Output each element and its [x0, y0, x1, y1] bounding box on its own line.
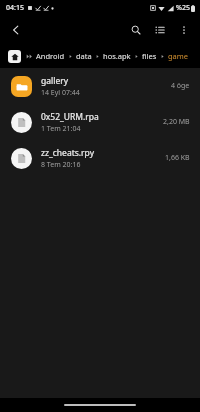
- staticText: 04:15: [6, 3, 24, 13]
- button[interactable]: zz_cheats.rpy: [0, 140, 200, 176]
- button[interactable]: gallery: [0, 68, 200, 104]
- staticText: 4 öge: [171, 81, 190, 91]
- button[interactable]: files: [142, 51, 157, 61]
- button[interactable]: Home: [8, 50, 21, 63]
- button[interactable]: 0x52_URM.rpa: [0, 104, 200, 140]
- button[interactable]: More options: [172, 18, 196, 42]
- staticText: gallery: [41, 75, 69, 87]
- staticText: 0x52_URM.rpa: [41, 111, 99, 123]
- staticText: 1 Tem 21:04: [41, 124, 81, 134]
- button[interactable]: Android: [36, 51, 65, 61]
- staticText: data: [76, 51, 92, 61]
- staticText: hos.apk: [103, 51, 131, 61]
- staticText: zz_cheats.rpy: [41, 147, 94, 159]
- button[interactable]: hos.apk: [103, 51, 131, 61]
- button[interactable]: Search: [124, 18, 148, 42]
- button[interactable]: View mode: [148, 18, 172, 42]
- staticText: Android: [36, 51, 65, 61]
- button[interactable]: game: [168, 51, 189, 61]
- staticText: 8 Tem 20:16: [41, 160, 81, 170]
- staticText: %25: [176, 3, 190, 13]
- staticText: game: [168, 51, 189, 61]
- staticText: 14 Eyl 07:44: [41, 88, 80, 98]
- staticText: files: [142, 51, 157, 61]
- staticText: 2,20 MB: [163, 117, 190, 127]
- staticText: 1,66 KB: [165, 153, 190, 163]
- button[interactable]: data: [76, 51, 92, 61]
- button[interactable]: Back: [4, 18, 28, 42]
